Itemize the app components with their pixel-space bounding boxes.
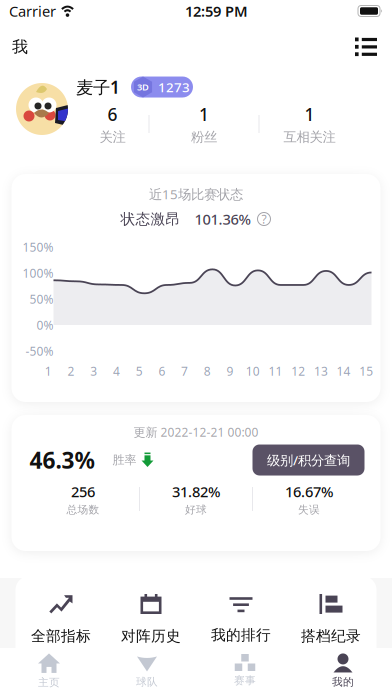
button[interactable]: Menu bbox=[355, 37, 377, 56]
staticText: 1 bbox=[45, 363, 52, 379]
staticText: 胜率 bbox=[112, 453, 136, 467]
button[interactable]: 赛事 bbox=[196, 648, 294, 696]
staticText: 13 bbox=[314, 363, 328, 379]
button[interactable]: 我的 bbox=[294, 648, 392, 696]
staticText: 12:59 PM bbox=[185, 1, 248, 21]
staticText: 50% bbox=[29, 291, 53, 307]
staticText: 3D bbox=[137, 81, 149, 93]
staticText: 失误 bbox=[298, 503, 320, 516]
button[interactable]: 1 bbox=[149, 104, 258, 144]
staticText: ? bbox=[261, 211, 266, 227]
staticText: 全部指标 bbox=[31, 627, 91, 645]
staticText: -50% bbox=[25, 343, 53, 359]
staticText: 101.36% bbox=[194, 209, 250, 229]
button[interactable]: Info bbox=[256, 211, 271, 226]
staticText: 主页 bbox=[38, 676, 60, 689]
staticText: 15 bbox=[359, 363, 373, 379]
staticText: 1273 bbox=[158, 78, 190, 96]
staticText: 0% bbox=[36, 317, 53, 333]
staticText: 6 bbox=[107, 103, 117, 126]
staticText: 256 bbox=[71, 482, 95, 501]
staticText: Carrier bbox=[9, 1, 56, 21]
button[interactable]: 我的排行 bbox=[196, 576, 286, 666]
staticText: 100% bbox=[22, 265, 53, 281]
staticText: 6 bbox=[158, 363, 165, 379]
staticText: 150% bbox=[22, 239, 53, 255]
staticText: 1 bbox=[304, 103, 314, 126]
staticText: 我 bbox=[12, 37, 28, 57]
staticText: 5 bbox=[136, 363, 143, 379]
staticText: 关注 bbox=[99, 129, 125, 145]
button[interactable]: 球队 bbox=[98, 648, 196, 696]
staticText: 粉丝 bbox=[191, 129, 217, 145]
staticText: 麦子1 bbox=[76, 75, 120, 98]
button[interactable]: 1 bbox=[259, 104, 359, 144]
staticText: 11 bbox=[268, 363, 282, 379]
staticText: 9 bbox=[226, 363, 233, 379]
staticText: 10 bbox=[246, 363, 260, 379]
staticText: 8 bbox=[204, 363, 211, 379]
staticText: 我的排行 bbox=[211, 626, 271, 644]
staticText: 16.67% bbox=[285, 482, 333, 501]
staticText: 对阵历史 bbox=[121, 627, 181, 645]
staticText: 31.82% bbox=[172, 482, 220, 501]
staticText: 1 bbox=[199, 103, 209, 126]
staticText: 46.3% bbox=[29, 445, 94, 475]
button[interactable]: 搭档纪录 bbox=[286, 576, 376, 666]
staticText: 互相关注 bbox=[283, 129, 335, 145]
button[interactable]: 全部指标 bbox=[16, 576, 106, 666]
staticText: 状态激昂 bbox=[120, 210, 180, 228]
staticText: 更新 2022-12-21 00:00 bbox=[133, 424, 258, 440]
button[interactable]: 级别/积分查询 bbox=[252, 444, 364, 475]
staticText: 2 bbox=[67, 363, 74, 379]
staticText: 3 bbox=[90, 363, 97, 379]
staticText: 总场数 bbox=[66, 503, 99, 516]
staticText: 好球 bbox=[185, 503, 207, 516]
staticText: 4 bbox=[113, 363, 120, 379]
button[interactable]: 6 bbox=[76, 104, 148, 144]
staticText: 级别/积分查询 bbox=[267, 451, 350, 469]
staticText: 近15场比赛状态 bbox=[149, 185, 243, 203]
staticText: 赛事 bbox=[234, 674, 256, 687]
button[interactable]: 对阵历史 bbox=[106, 576, 196, 666]
staticText: 12 bbox=[291, 363, 305, 379]
button[interactable]: 主页 bbox=[0, 648, 98, 696]
staticText: 我的 bbox=[332, 675, 354, 688]
staticText: 14 bbox=[337, 363, 351, 379]
staticText: 7 bbox=[181, 363, 188, 379]
staticText: 球队 bbox=[136, 675, 158, 688]
staticText: 搭档纪录 bbox=[301, 627, 361, 645]
